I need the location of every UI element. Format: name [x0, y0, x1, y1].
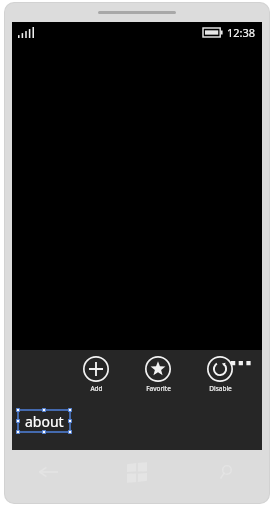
staticText: Disable: [209, 384, 232, 393]
staticText: Add: [90, 384, 103, 393]
staticText: 12:38: [227, 25, 256, 40]
staticText: about: [25, 412, 64, 431]
button[interactable]: about: [18, 410, 70, 432]
button[interactable]: More options: [228, 354, 254, 372]
button[interactable]: Disable: [198, 356, 242, 393]
button[interactable]: Favorite: [136, 356, 180, 393]
staticText: Favorite: [146, 384, 171, 393]
button[interactable]: Add: [74, 356, 118, 393]
